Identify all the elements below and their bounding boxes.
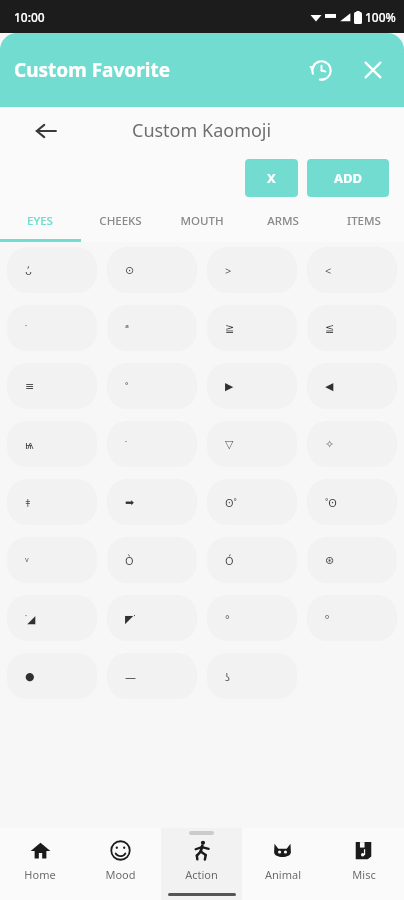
button[interactable]: ▶ (207, 363, 297, 409)
staticText: ARMS (267, 213, 299, 229)
button[interactable]: ✧ (307, 421, 397, 467)
button[interactable]: ° (207, 595, 297, 641)
staticText: Animal (265, 867, 301, 882)
staticText: Ó (225, 553, 234, 568)
staticText: ◀ (325, 380, 334, 393)
staticText: ° (225, 611, 230, 626)
button[interactable]: Close (356, 53, 390, 87)
button[interactable]: Ò (107, 537, 197, 583)
button[interactable]: ◤˙ (107, 595, 197, 641)
button[interactable]: ǂ (7, 479, 97, 525)
staticText: ˚ʘ (325, 495, 337, 510)
button[interactable]: MOUTH (161, 202, 242, 239)
button[interactable]: ▽ (207, 421, 297, 467)
staticText: ǂ (25, 495, 31, 510)
button[interactable]: ADD (307, 159, 389, 197)
button[interactable]: ≡ (7, 363, 97, 409)
button[interactable]: ˚ʘ (307, 479, 397, 525)
staticText: ˚ (125, 379, 129, 394)
staticText: ˙◢ (25, 611, 36, 626)
button[interactable]: — (107, 653, 197, 699)
button[interactable]: Action (161, 828, 242, 900)
button[interactable]: < (307, 247, 397, 293)
staticText: > (225, 263, 232, 278)
staticText: MOUTH (180, 213, 224, 229)
button[interactable]: ʖ (207, 653, 297, 699)
button[interactable]: Mood (80, 828, 161, 900)
button[interactable]: ⊛ (307, 537, 397, 583)
button[interactable]: ≦ (307, 305, 397, 351)
staticText: ⊙ (125, 264, 135, 277)
staticText: 10:00 (14, 9, 45, 25)
staticText: < (325, 263, 332, 278)
staticText: ʖ (225, 669, 230, 684)
button[interactable]: ѩ (7, 421, 97, 467)
staticText: ˙ (25, 321, 28, 336)
staticText: Custom Favorite (14, 57, 170, 83)
staticText: ✧ (325, 438, 335, 451)
button[interactable]: ◀ (307, 363, 397, 409)
staticText: Mood (105, 867, 136, 882)
button[interactable]: ᵛ (7, 537, 97, 583)
staticText: ≦ (325, 322, 335, 335)
button[interactable]: ˚ (107, 363, 197, 409)
staticText: CHEEKS (99, 213, 142, 229)
staticText: ʘ˚ (225, 495, 237, 510)
staticText: ѩ (25, 437, 34, 452)
staticText: — (125, 669, 136, 684)
button[interactable]: EYES (0, 202, 80, 239)
staticText: ≡ (25, 380, 35, 393)
staticText: ≧ (225, 322, 235, 335)
button[interactable]: ➡ (107, 479, 197, 525)
staticText: Misc (352, 867, 376, 882)
button[interactable]: X (245, 159, 298, 197)
button[interactable]: ª (107, 305, 197, 351)
button[interactable]: Animal (242, 828, 323, 900)
button[interactable]: ● (7, 653, 97, 699)
staticText: ᴗ̓ (25, 263, 32, 278)
staticText: ▶ (225, 380, 234, 393)
staticText: ◤˙ (125, 611, 136, 626)
staticText: ● (25, 670, 35, 683)
staticText: ⊛ (325, 554, 335, 567)
button[interactable]: ARMS (242, 202, 323, 239)
button[interactable]: ᴗ̓ (7, 247, 97, 293)
button[interactable]: ⊙ (107, 247, 197, 293)
button[interactable]: º (307, 595, 397, 641)
staticText: 100% (365, 9, 396, 25)
button[interactable]: > (207, 247, 297, 293)
staticText: ➡ (125, 496, 135, 509)
button[interactable]: History (304, 53, 338, 87)
staticText: ▽ (225, 438, 234, 451)
staticText: Home (24, 867, 56, 882)
button[interactable]: Ó (207, 537, 297, 583)
staticText: X (267, 169, 276, 187)
button[interactable]: Back (28, 113, 64, 149)
staticText: ª (125, 321, 129, 336)
staticText: ˙ (125, 437, 128, 452)
staticText: ADD (334, 169, 363, 187)
staticText: Ò (125, 553, 134, 568)
button[interactable]: ≧ (207, 305, 297, 351)
staticText: º (325, 611, 330, 626)
button[interactable]: ˙◢ (7, 595, 97, 641)
staticText: ITEMS (347, 213, 381, 229)
button[interactable]: CHEEKS (80, 202, 161, 239)
staticText: Custom Kaomoji (132, 118, 272, 143)
button[interactable]: Misc (323, 828, 404, 900)
staticText: EYES (27, 213, 53, 229)
button[interactable]: ITEMS (323, 202, 404, 239)
staticText: ᵛ (25, 553, 29, 568)
button[interactable]: Home (0, 828, 80, 900)
staticText: Action (185, 867, 218, 882)
button[interactable]: ʘ˚ (207, 479, 297, 525)
